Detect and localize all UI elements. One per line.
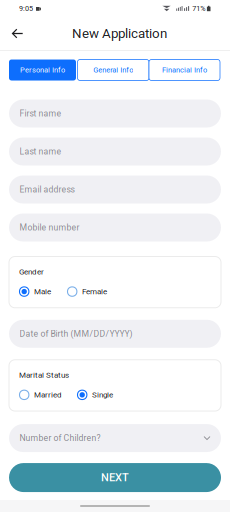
staticText: Mobile number <box>19 222 79 233</box>
staticText: Date of Birth (MM/DD/YYYY) <box>19 329 132 339</box>
staticText: Number of Children? <box>19 433 100 443</box>
button[interactable]: Email address <box>9 175 221 203</box>
staticText: Marital Status <box>19 370 69 380</box>
button[interactable]: Back <box>0 20 34 47</box>
button[interactable]: Male <box>19 286 51 297</box>
staticText: 9:05 <box>19 4 33 13</box>
staticText: First name <box>19 108 61 119</box>
button[interactable]: Last name <box>9 137 221 165</box>
staticText: Married <box>34 390 62 400</box>
button[interactable]: Mobile number <box>9 213 221 241</box>
staticText: Email address <box>19 184 74 195</box>
button[interactable]: First name <box>9 99 221 127</box>
staticText: Gender <box>19 267 44 276</box>
staticText: General Info <box>93 66 133 74</box>
button[interactable]: Single <box>77 390 113 400</box>
staticText: New Application <box>72 26 167 41</box>
staticText: Single <box>92 390 113 400</box>
button[interactable]: Married <box>19 390 62 400</box>
button[interactable]: Female <box>67 286 107 297</box>
staticText: Financial Info <box>162 66 207 74</box>
staticText: Personal Info <box>20 66 65 74</box>
button[interactable]: Date of Birth (MM/DD/YYYY) <box>9 320 221 348</box>
staticText: Last name <box>19 146 61 157</box>
button[interactable]: Financial Info <box>149 59 220 80</box>
staticText: 71% <box>192 4 205 13</box>
staticText: Female <box>82 287 107 296</box>
button[interactable]: NEXT <box>9 463 221 492</box>
button[interactable]: General Info <box>77 59 149 80</box>
staticText: Male <box>34 287 51 296</box>
button[interactable]: Personal Info <box>9 59 76 80</box>
button[interactable]: Number of Children? <box>9 424 221 452</box>
staticText: NEXT <box>101 471 129 484</box>
